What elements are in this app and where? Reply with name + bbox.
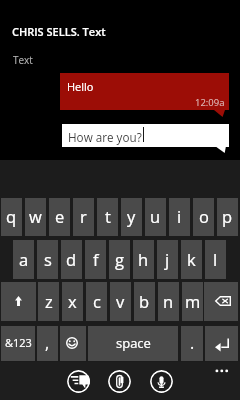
button[interactable]: s xyxy=(37,240,58,279)
staticText: 12:09a xyxy=(195,96,225,109)
staticText: b xyxy=(139,290,150,312)
staticText: a xyxy=(19,248,29,270)
button[interactable]: y xyxy=(121,198,142,236)
staticText: m xyxy=(185,290,201,312)
staticText: f xyxy=(93,248,99,270)
staticText: h xyxy=(138,248,149,270)
staticText: Hello xyxy=(67,79,94,94)
button[interactable]: Send message xyxy=(67,370,90,393)
staticText: x xyxy=(68,290,77,312)
button[interactable]: , xyxy=(37,326,58,361)
button[interactable]: j xyxy=(157,240,178,279)
button[interactable]: &123 xyxy=(1,326,35,361)
staticText: q xyxy=(6,205,17,227)
button[interactable]: f xyxy=(85,240,106,279)
staticText: v xyxy=(116,290,125,312)
staticText: CHRIS SELLS. Text xyxy=(12,24,106,39)
button[interactable]: Enter xyxy=(205,326,238,361)
staticText: u xyxy=(150,205,161,227)
staticText: space xyxy=(116,334,151,352)
button[interactable]: u xyxy=(145,198,166,236)
button[interactable]: x xyxy=(62,282,83,321)
staticText: t xyxy=(105,205,111,227)
button[interactable]: Emoji xyxy=(60,326,86,361)
button[interactable]: v xyxy=(110,282,131,321)
staticText: e xyxy=(55,205,65,227)
staticText: l xyxy=(213,248,218,270)
staticText: g xyxy=(115,248,124,270)
button[interactable]: More options xyxy=(206,364,240,380)
button[interactable]: q xyxy=(1,198,22,236)
button[interactable]: Attach xyxy=(108,370,131,393)
staticText: p xyxy=(222,205,233,227)
button[interactable]: k xyxy=(181,240,202,279)
button[interactable]: Voice message xyxy=(150,370,173,393)
staticText: d xyxy=(66,248,77,270)
button[interactable]: o xyxy=(193,198,214,236)
button[interactable]: g xyxy=(109,240,130,279)
button[interactable]: d xyxy=(61,240,82,279)
button[interactable]: e xyxy=(49,198,70,236)
staticText: &123 xyxy=(5,335,32,350)
staticText: c xyxy=(93,290,101,312)
button[interactable]: z xyxy=(38,282,59,321)
button[interactable]: b xyxy=(134,282,155,321)
staticText: , xyxy=(45,332,50,354)
staticText: Text xyxy=(13,53,33,67)
button[interactable]: a xyxy=(13,240,34,279)
staticText: j xyxy=(165,248,170,270)
button[interactable]: n xyxy=(158,282,179,321)
button[interactable]: p xyxy=(217,198,238,236)
button[interactable]: c xyxy=(86,282,107,321)
staticText: . xyxy=(190,332,195,354)
staticText: n xyxy=(163,290,174,312)
staticText: r xyxy=(80,205,87,227)
staticText: i xyxy=(177,205,182,227)
staticText: s xyxy=(44,248,52,270)
staticText: z xyxy=(45,290,53,312)
staticText: y xyxy=(127,205,136,227)
button[interactable]: Backspace xyxy=(204,282,238,321)
button[interactable]: . xyxy=(181,326,203,361)
staticText: How are you? xyxy=(68,129,142,145)
staticText: w xyxy=(29,205,42,227)
button[interactable]: t xyxy=(97,198,118,236)
button[interactable]: m xyxy=(182,282,203,321)
button[interactable]: i xyxy=(169,198,190,236)
button[interactable]: l xyxy=(205,240,226,279)
button[interactable]: r xyxy=(73,198,94,236)
button[interactable]: Shift xyxy=(1,282,36,321)
button[interactable]: space xyxy=(88,326,178,361)
button[interactable]: w xyxy=(25,198,46,236)
staticText: o xyxy=(199,205,209,227)
staticText: k xyxy=(187,248,196,270)
button[interactable]: h xyxy=(133,240,154,279)
